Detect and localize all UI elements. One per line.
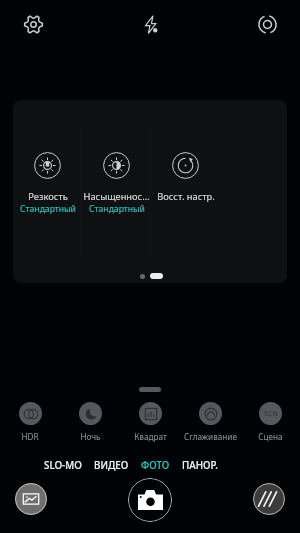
- button[interactable]: Flash auto: [133, 7, 167, 41]
- staticText: ПАНОР.: [182, 459, 218, 472]
- button[interactable]: Take photo: [128, 478, 172, 522]
- staticText: SLO-MO: [44, 459, 82, 472]
- staticText: Ночь: [80, 431, 101, 442]
- staticText: SCN: [264, 409, 278, 419]
- staticText: HDR: [21, 431, 39, 442]
- button[interactable]: Квадрат: [120, 402, 180, 442]
- staticText: Квадрат: [134, 431, 167, 442]
- staticText: Резкость: [28, 190, 68, 203]
- button[interactable]: SLO-MO: [38, 456, 88, 475]
- button[interactable]: Резкость: [13, 152, 82, 215]
- staticText: Насыщеннос…: [83, 190, 150, 203]
- staticText: Сцена: [258, 431, 283, 442]
- button[interactable]: Settings: [16, 7, 50, 41]
- staticText: Стандартный: [89, 203, 145, 215]
- staticText: Восст. настр.: [157, 190, 215, 203]
- button[interactable]: Сглаживание: [180, 402, 240, 442]
- button[interactable]: ВИДЕО: [88, 456, 135, 475]
- staticText: ВИДЕО: [94, 459, 129, 472]
- button[interactable]: Насыщеннос…: [82, 152, 151, 215]
- button[interactable]: Ночь: [60, 402, 120, 442]
- button[interactable]: SCN: [240, 402, 300, 442]
- button[interactable]: Filters: [253, 483, 285, 515]
- button[interactable]: ФОТО: [135, 456, 176, 475]
- staticText: ФОТО: [141, 459, 170, 472]
- button[interactable]: ПАНОР.: [176, 456, 224, 475]
- staticText: Стандартный: [20, 203, 76, 215]
- button[interactable]: Gallery: [15, 483, 47, 515]
- staticText: Сглаживание: [184, 431, 237, 442]
- button[interactable]: Восст. настр.: [151, 152, 220, 203]
- button[interactable]: HDR: [0, 402, 60, 442]
- button[interactable]: Switch camera: [250, 7, 284, 41]
